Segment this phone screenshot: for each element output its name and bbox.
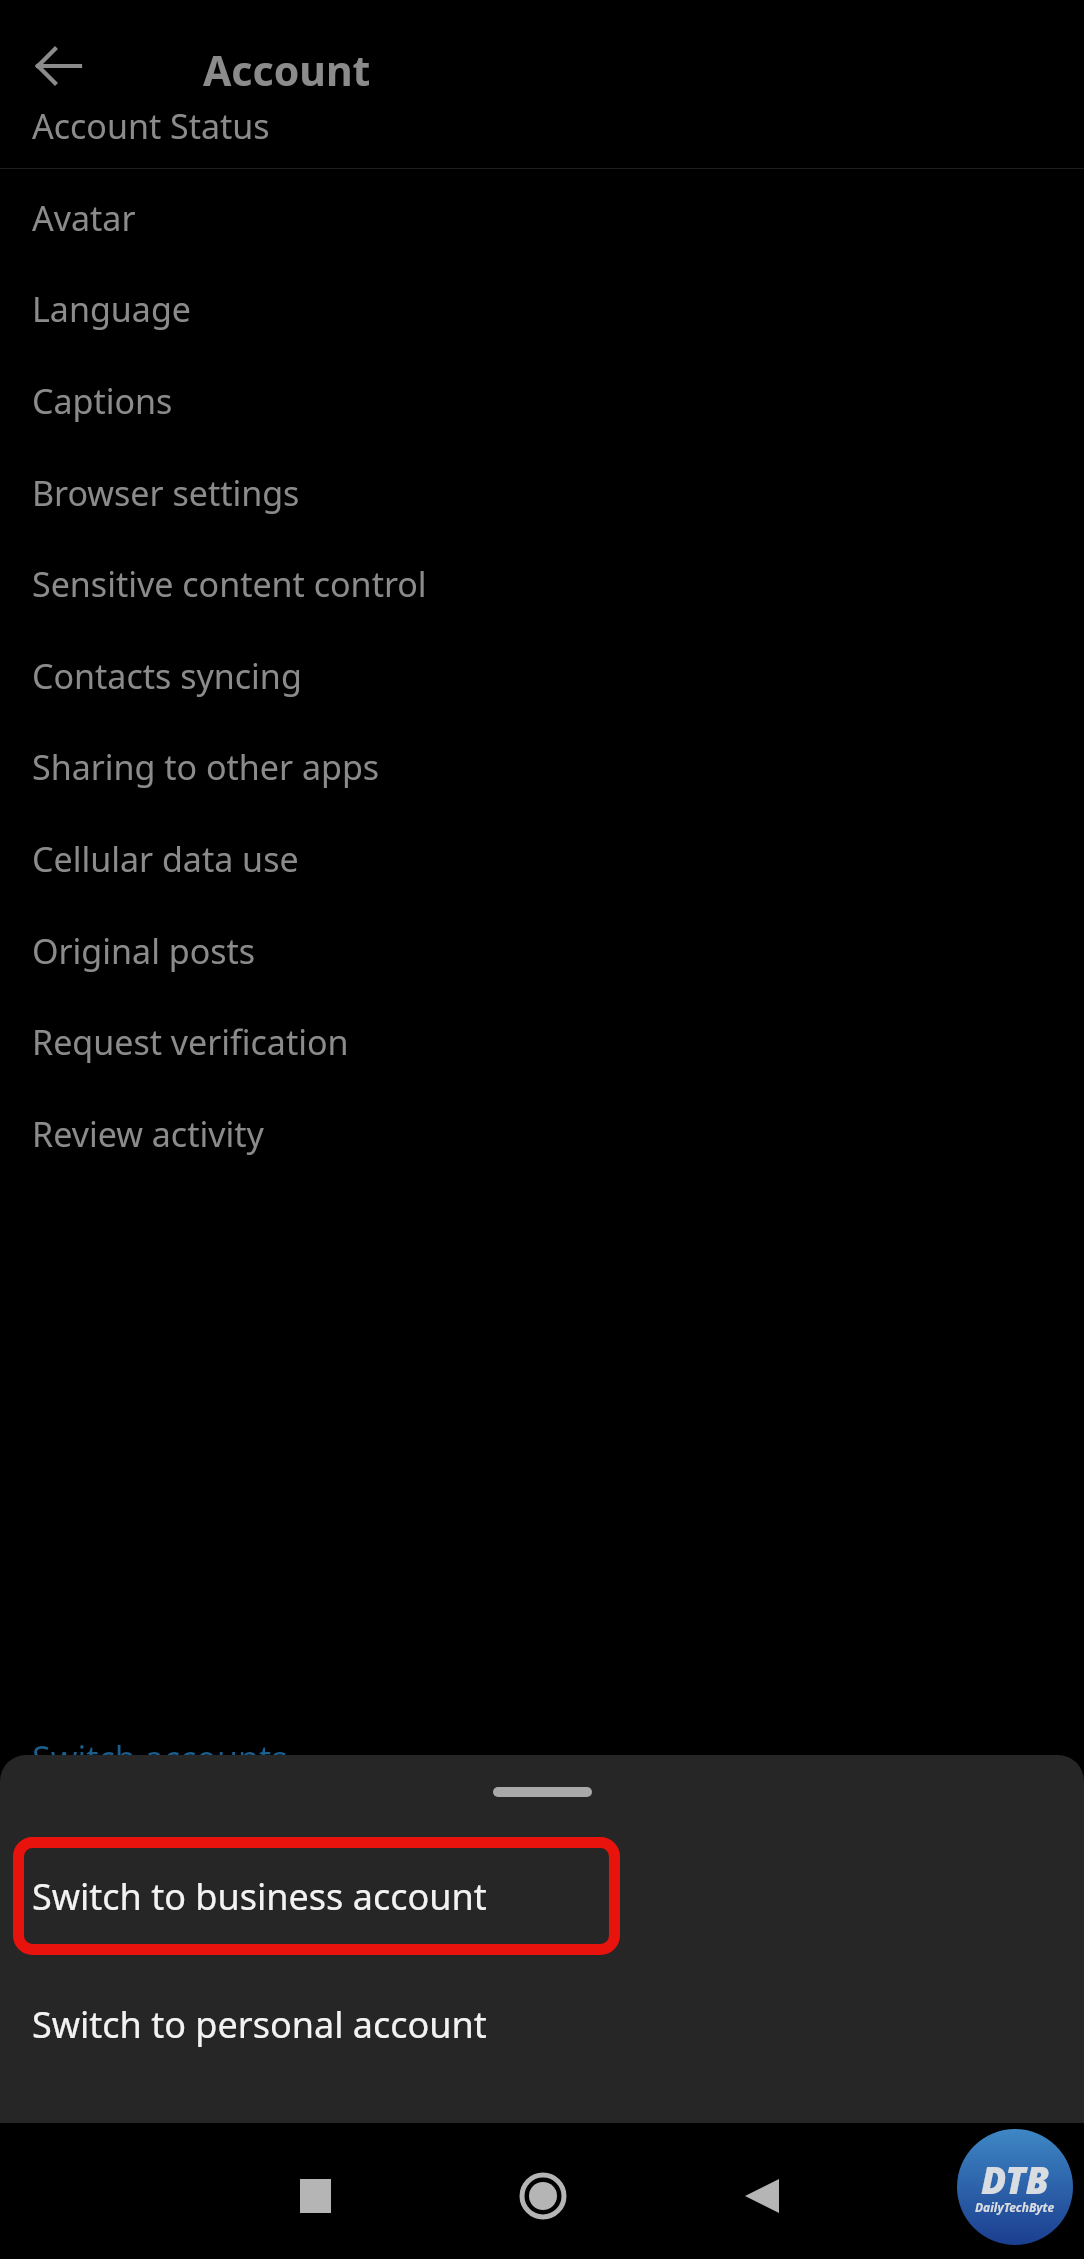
button[interactable]: Recents [250, 2131, 380, 2259]
button[interactable]: Original posts [0, 905, 1084, 996]
staticText: Review activity [32, 1111, 264, 1157]
button[interactable]: Contacts syncing [0, 630, 1084, 721]
staticText: Cellular data use [32, 836, 299, 882]
staticText: Captions [32, 378, 173, 424]
staticText: Contacts syncing [32, 653, 302, 699]
button[interactable]: Request verification [0, 996, 1084, 1087]
button[interactable]: Switch accounts [0, 1712, 1084, 1803]
button[interactable]: Back [697, 2131, 827, 2259]
button[interactable]: Sensitive content control [0, 538, 1084, 629]
staticText: Switch to business account [32, 1872, 487, 1921]
staticText: Avatar [32, 195, 136, 241]
button[interactable]: Switch to business account [0, 1837, 1084, 1955]
button[interactable]: Avatar [0, 172, 1084, 263]
staticText: Request verification [32, 1019, 349, 1065]
staticText: Account [203, 42, 371, 98]
button[interactable]: Cellular data use [0, 813, 1084, 904]
staticText: Sensitive content control [32, 561, 427, 607]
button[interactable]: Language [0, 263, 1084, 354]
button[interactable]: Back [30, 38, 86, 94]
button[interactable]: Home [478, 2131, 608, 2259]
staticText: Browser settings [32, 470, 300, 516]
staticText: Account Status [32, 103, 270, 149]
button[interactable]: Captions [0, 355, 1084, 446]
button[interactable]: Browser settings [0, 447, 1084, 538]
button[interactable]: Switch to personal account [0, 1965, 1084, 2083]
staticText: Language [32, 286, 191, 332]
button[interactable]: Review activity [0, 1088, 1084, 1179]
staticText: Original posts [32, 928, 256, 974]
staticText: DailyTechByte [975, 2199, 1055, 2215]
staticText: Switch accounts [32, 1735, 288, 1781]
staticText: DTB [981, 2154, 1050, 2204]
staticText: Switch to personal account [32, 2000, 487, 2049]
button[interactable]: Sharing to other apps [0, 721, 1084, 812]
staticText: Sharing to other apps [32, 744, 380, 790]
button[interactable]: Account Status [0, 80, 1084, 171]
